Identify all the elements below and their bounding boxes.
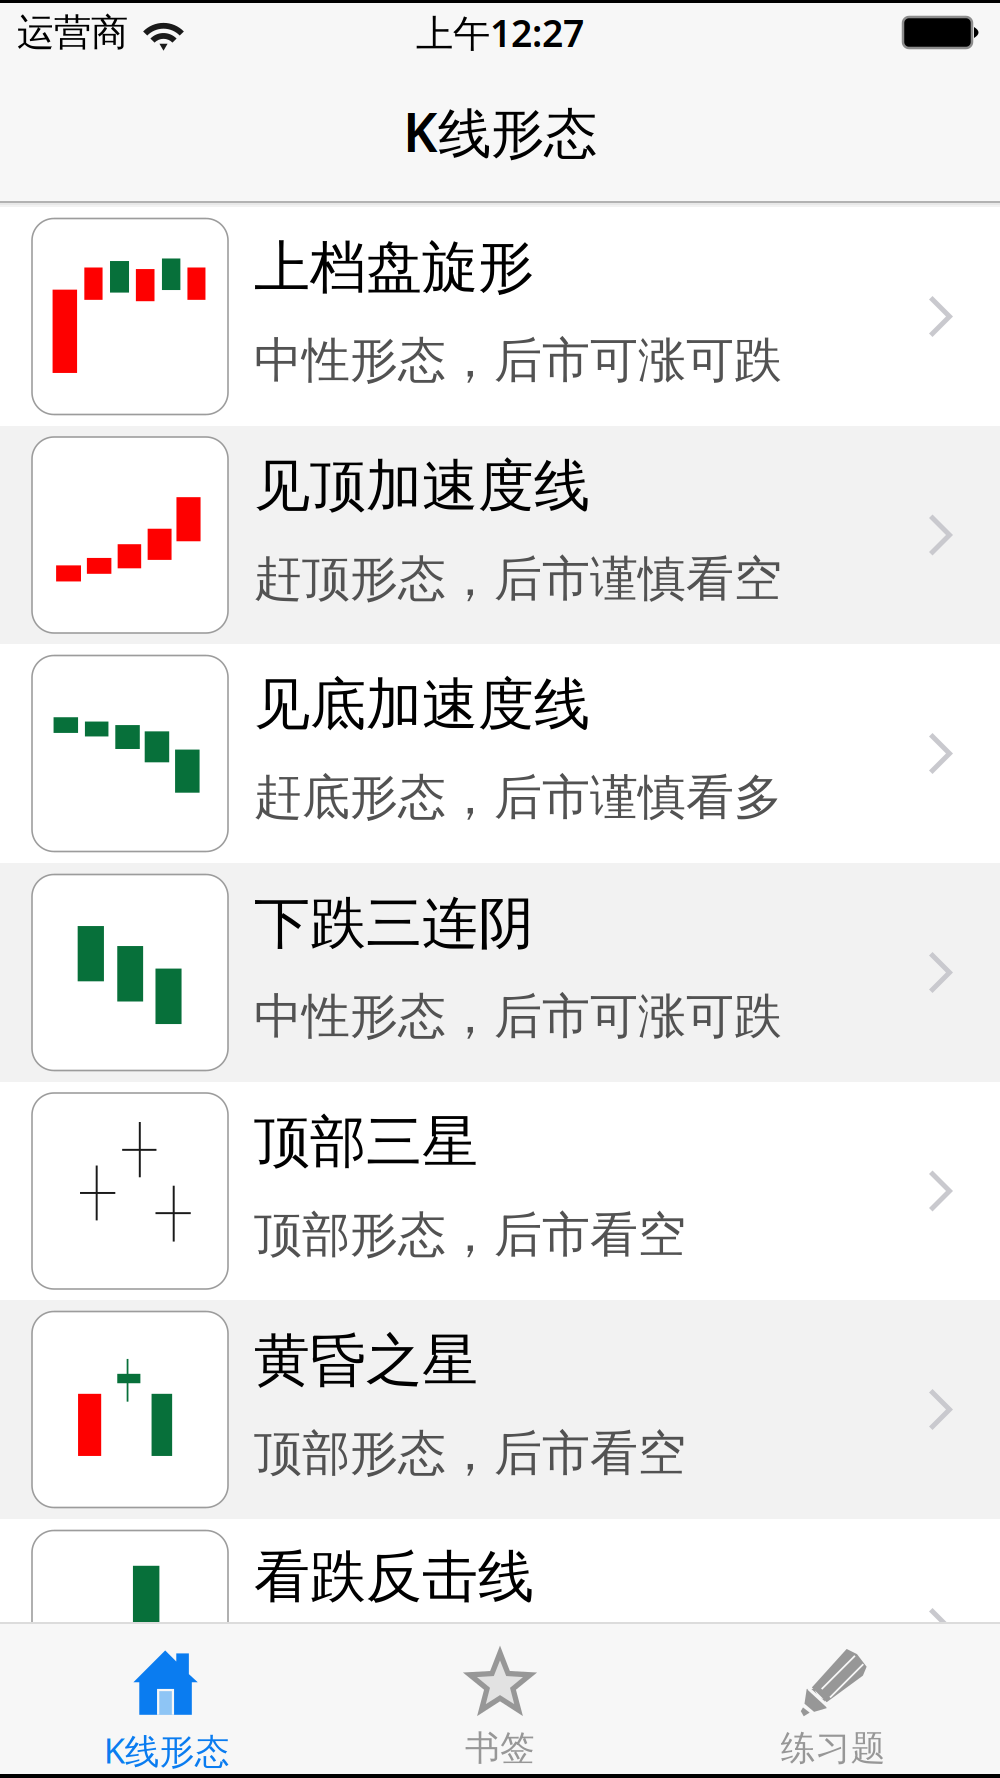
staticText: 书签 [465, 1727, 535, 1770]
staticText: 中性形态，后市可涨可跌 [254, 331, 782, 390]
staticText: 中性形态，后市可涨可跌 [254, 987, 782, 1046]
staticText: 看跌反击线 [254, 1543, 534, 1611]
staticText: 上档盘旋形 [254, 233, 534, 302]
staticText: 顶部三星 [254, 1108, 478, 1176]
button[interactable]: 见底加速度线 [0, 644, 1000, 863]
staticText: K线形态 [403, 96, 597, 167]
staticText: 赶底形态，后市谨慎看多 [254, 768, 782, 827]
button[interactable]: 下跌三连阴 [0, 863, 1000, 1082]
staticText: 练习题 [781, 1727, 886, 1770]
button[interactable]: 看跌反击线 [0, 1519, 1000, 1738]
staticText: K线形态 [104, 1727, 230, 1773]
staticText: 顶部形态，后市看空 [254, 1424, 686, 1483]
button[interactable]: 书签 [333, 1624, 667, 1778]
staticText: 运营商 [17, 10, 128, 55]
button[interactable]: K线形态 [0, 1624, 333, 1778]
button[interactable]: 练习题 [667, 1624, 1000, 1778]
staticText: 见底加速度线 [254, 670, 590, 739]
button[interactable]: 顶部三星 [0, 1082, 1000, 1300]
staticText: 黄昏之星 [254, 1326, 478, 1395]
button[interactable]: 上档盘旋形 [0, 207, 1000, 426]
staticText: 顶部形态，后市看空 [254, 1205, 686, 1264]
button[interactable]: 见顶加速度线 [0, 426, 1000, 644]
staticText: 上午12:27 [416, 8, 584, 57]
button[interactable]: 黄昏之星 [0, 1300, 1000, 1519]
staticText: 下跌三连阴 [254, 889, 534, 958]
staticText: 见顶加速度线 [254, 452, 590, 520]
staticText: 赶顶形态，后市谨慎看空 [254, 549, 782, 608]
